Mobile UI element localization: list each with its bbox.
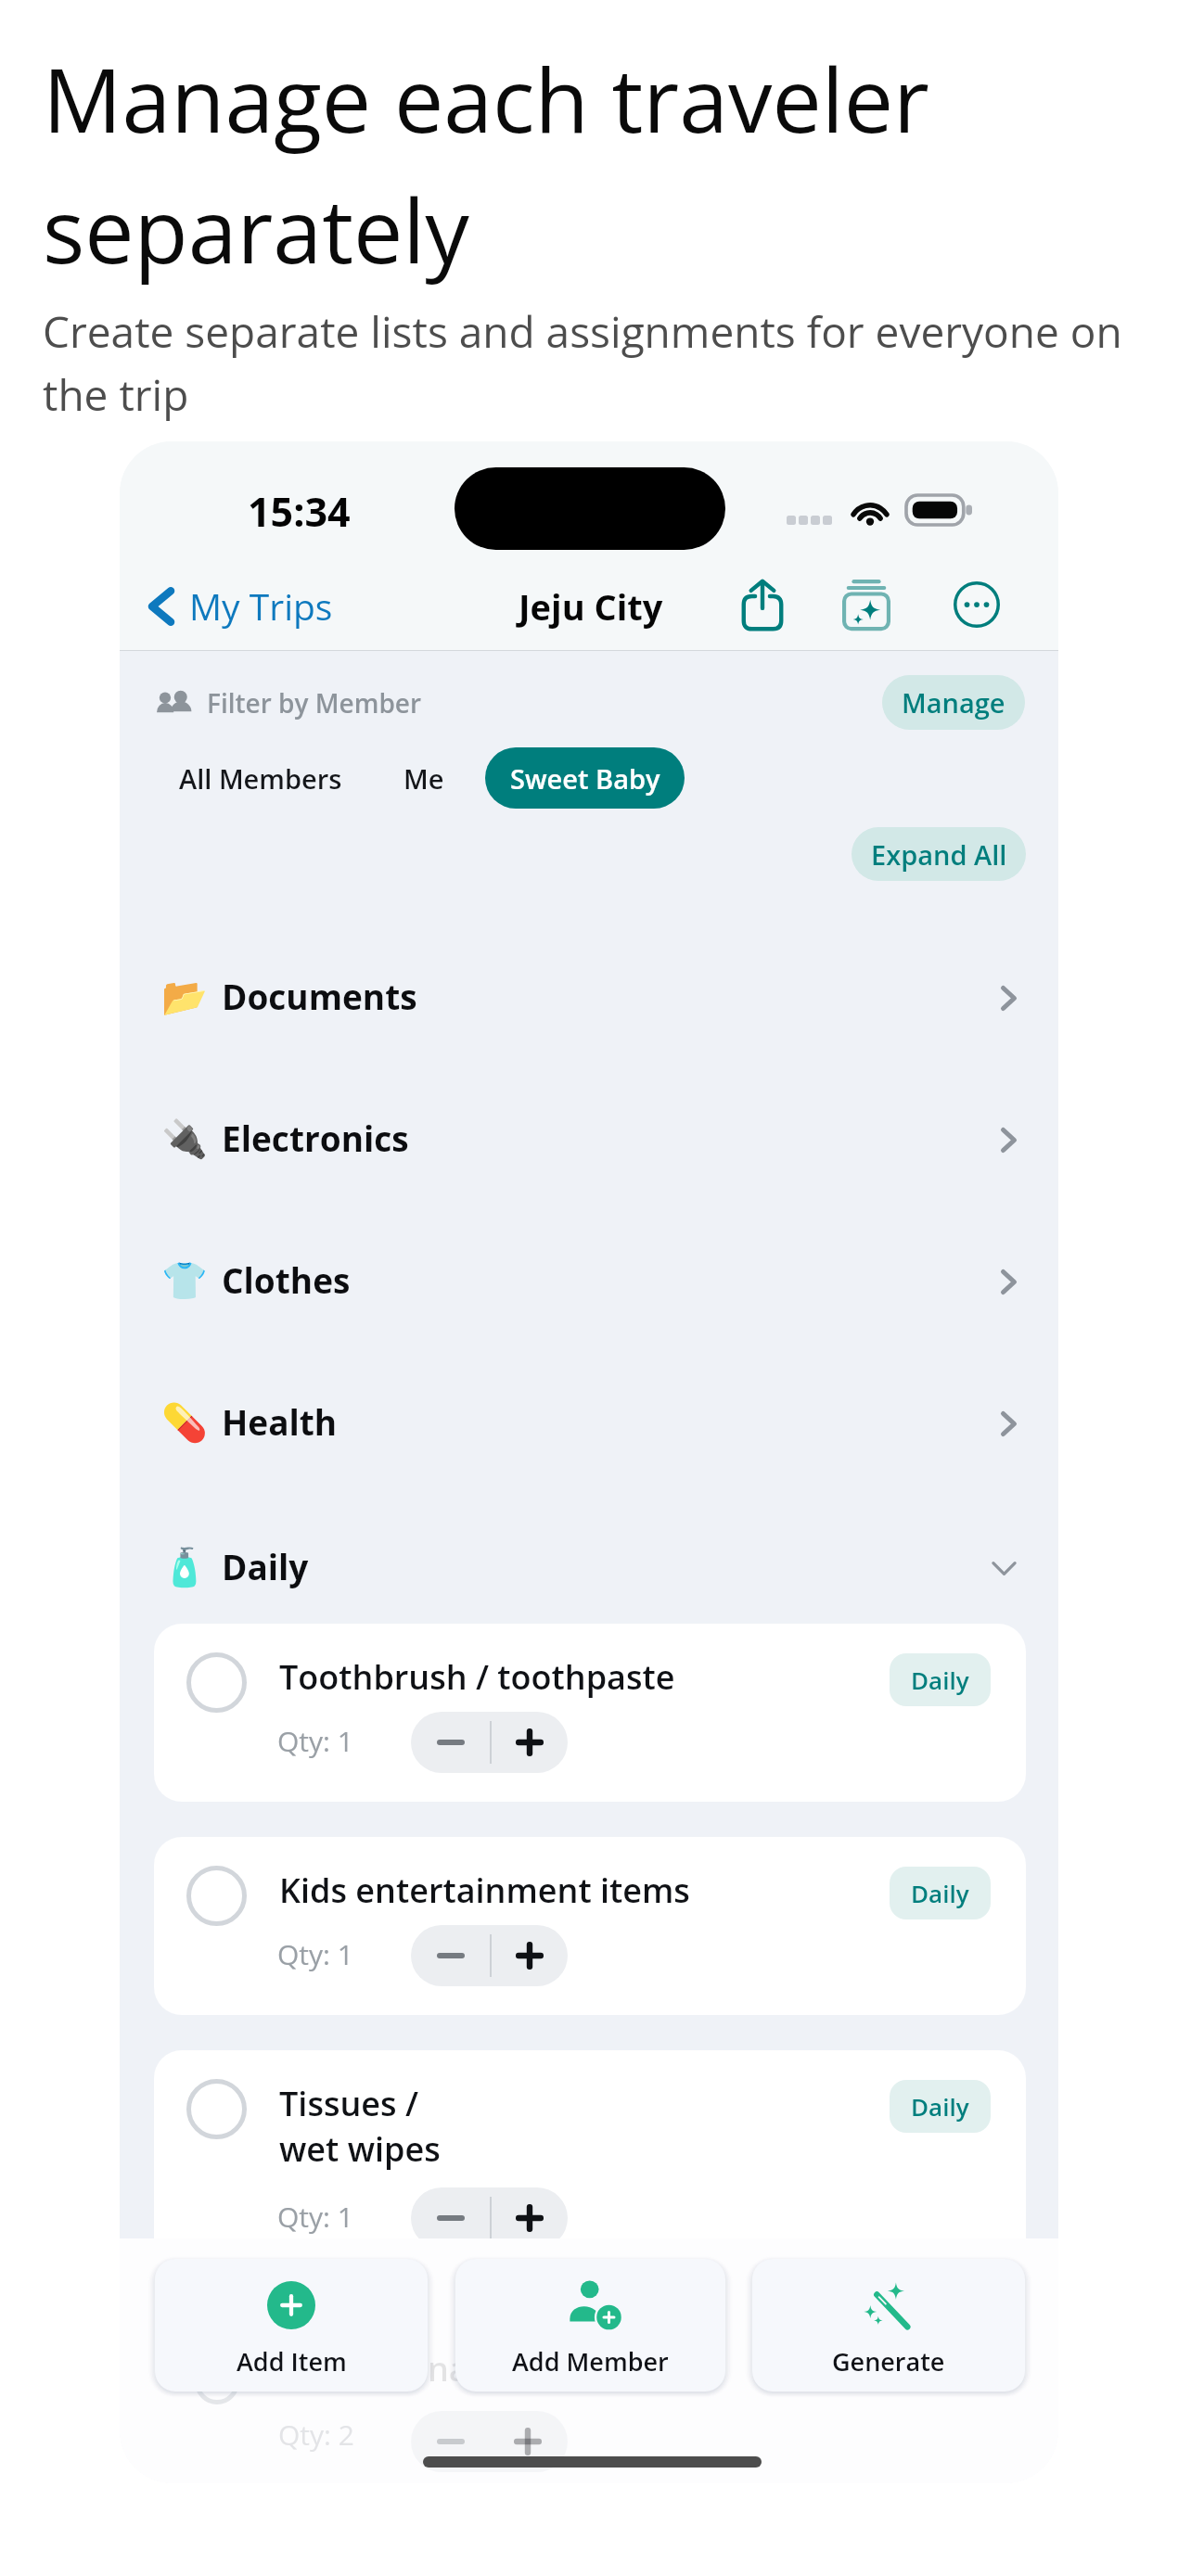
- staticText: Qty: 2: [278, 2416, 354, 2454]
- staticText: Me: [403, 760, 444, 797]
- button[interactable]: Generate: [752, 2259, 1025, 2391]
- button[interactable]: 👕: [120, 1224, 1058, 1335]
- button[interactable]: Increase quantity: [492, 1712, 568, 1773]
- staticText: Add Member: [512, 2344, 669, 2378]
- staticText: wet wipes: [279, 2126, 441, 2172]
- staticText: Add Item: [237, 2344, 347, 2378]
- button[interactable]: Increase quantity: [492, 1925, 568, 1986]
- staticText: Expand All: [871, 836, 1007, 873]
- button[interactable]: Sweet Baby: [485, 747, 685, 809]
- staticText: Manage: [902, 684, 1005, 721]
- staticText: Filter by Member: [207, 685, 422, 721]
- staticText: Sweet Baby: [510, 760, 660, 797]
- staticText: Kids entertainment items: [279, 1868, 690, 1913]
- staticText: 💊: [161, 1401, 208, 1445]
- staticText: Generate: [832, 2344, 945, 2378]
- staticText: Toothbrush / toothpaste: [279, 1654, 675, 1700]
- button[interactable]: More options: [941, 569, 1012, 640]
- staticText: Daily: [911, 1877, 969, 1909]
- staticText: Qty: 1: [277, 1935, 353, 1973]
- staticText: My Trips: [189, 581, 333, 631]
- button[interactable]: Decrease quantity: [411, 1925, 490, 1986]
- button[interactable]: My Trips: [132, 568, 350, 644]
- button[interactable]: Share: [727, 569, 798, 640]
- staticText: Qty: 1: [277, 2198, 353, 2236]
- staticText: 🧴: [161, 1546, 208, 1589]
- button[interactable]: Auto sort: [831, 569, 902, 640]
- staticText: 15:34: [248, 484, 351, 539]
- staticText: Health: [222, 1398, 338, 1445]
- button[interactable]: 🔌: [120, 1082, 1058, 1193]
- staticText: 🔌: [161, 1117, 208, 1161]
- button[interactable]: 🧴: [120, 1511, 1058, 1622]
- button[interactable]: Add Member: [455, 2259, 725, 2391]
- staticText: 👕: [161, 1259, 208, 1303]
- button[interactable]: Increase quantity: [492, 2187, 568, 2249]
- staticText: Jeju City: [519, 582, 663, 631]
- staticText: Daily: [911, 1664, 969, 1696]
- staticText: Daily: [911, 2090, 969, 2123]
- staticText: Daily: [222, 1543, 309, 1589]
- staticText: Clothes: [222, 1256, 351, 1303]
- button[interactable]: Toothbrush / toothpaste: [154, 1624, 1026, 1802]
- button[interactable]: Add Item: [155, 2259, 428, 2391]
- staticText: Qty: 1: [277, 1722, 353, 1760]
- button[interactable]: Decrease quantity: [411, 1712, 490, 1773]
- button[interactable]: 💊: [120, 1366, 1058, 1477]
- staticText: All Members: [179, 760, 342, 797]
- button[interactable]: 📂: [120, 940, 1058, 1052]
- staticText: 📂: [161, 976, 208, 1019]
- button[interactable]: Me: [378, 747, 470, 809]
- button[interactable]: Manage: [882, 675, 1025, 730]
- staticText: Documents: [222, 973, 417, 1019]
- staticText: Create separate lists and assignments fo…: [43, 302, 1130, 423]
- staticText: Electronics: [222, 1115, 409, 1161]
- button[interactable]: Kids entertainment items: [154, 1837, 1026, 2015]
- staticText: Manage each traveler separately: [43, 38, 1128, 289]
- button[interactable]: Decrease quantity: [411, 2187, 490, 2249]
- button[interactable]: All Members: [160, 747, 361, 809]
- staticText: na: [428, 2346, 468, 2391]
- button[interactable]: Expand All: [852, 827, 1026, 881]
- button[interactable]: Tissues /: [154, 2050, 1026, 2293]
- staticText: Tissues /: [279, 2081, 418, 2126]
